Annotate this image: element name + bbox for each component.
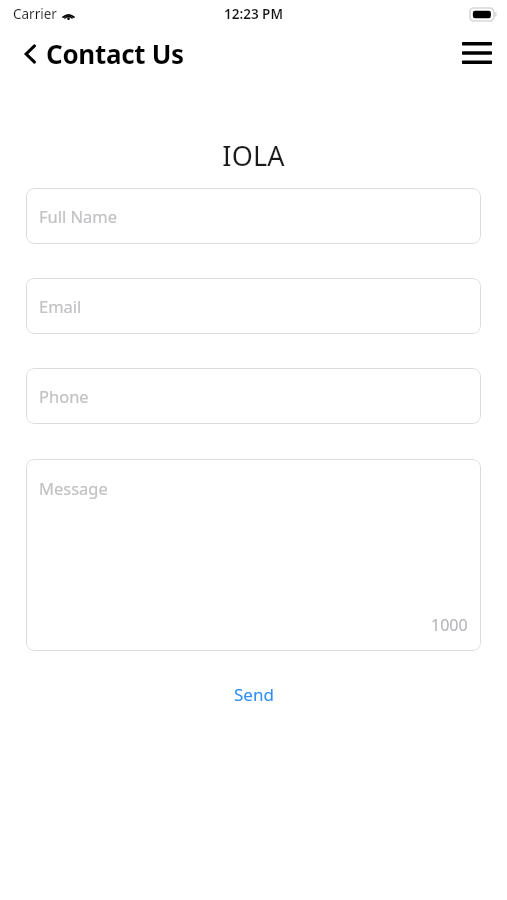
staticText: Message — [39, 477, 108, 499]
staticText: Full Name — [39, 205, 118, 227]
staticText: Contact Us — [46, 36, 184, 71]
button[interactable]: Send — [220, 678, 288, 711]
staticText: Phone — [39, 385, 89, 407]
staticText: 1000 — [431, 614, 468, 636]
staticText: Carrier — [13, 5, 57, 23]
button[interactable]: Email — [26, 278, 481, 334]
button[interactable]: Back — [0, 32, 194, 75]
staticText: Email — [39, 295, 82, 317]
button[interactable]: Full Name — [26, 188, 481, 244]
staticText: IOLA — [0, 137, 507, 174]
staticText: 12:23 PM — [224, 5, 283, 23]
other: Back — [22, 41, 38, 67]
staticText: Send — [234, 683, 274, 706]
button[interactable]: Phone — [26, 368, 481, 424]
button[interactable]: Menu — [458, 38, 496, 68]
button[interactable]: Message — [26, 459, 481, 651]
